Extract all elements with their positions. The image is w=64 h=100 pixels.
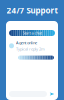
staticText: 24/7 Support [6,5,57,16]
staticText: Agent online [16,40,37,45]
button[interactable]: Send [49,91,55,97]
staticText: Typical reply 2m [16,46,45,52]
button[interactable] [6,56,58,60]
staticText: Start a chat [22,30,41,36]
button[interactable]: Start a chat [6,30,58,36]
